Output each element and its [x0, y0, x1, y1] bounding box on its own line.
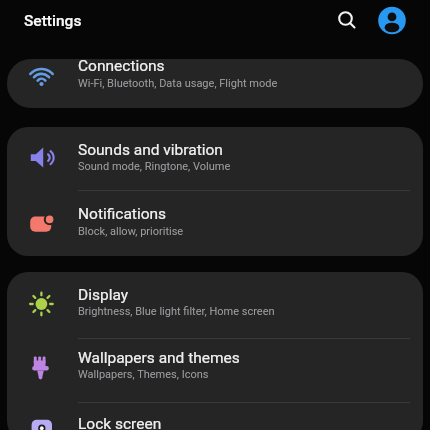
button[interactable] [7, 338, 423, 402]
staticText: Block, allow, prioritise [78, 225, 184, 238]
button[interactable] [7, 127, 423, 190]
button[interactable] [7, 402, 423, 430]
button[interactable] [7, 190, 423, 256]
staticText: Connections [78, 57, 165, 75]
staticText: Wallpapers, Themes, Icons [78, 368, 209, 381]
staticText: Wi-Fi, Bluetooth, Data usage, Flight mod… [78, 77, 278, 90]
staticText: Lock screen [78, 415, 162, 430]
staticText: Brightness, Blue light filter, Home scre… [78, 305, 275, 318]
staticText: Sound mode, Ringtone, Volume [78, 160, 231, 173]
button[interactable] [7, 59, 423, 108]
staticText: Notifications [78, 205, 167, 223]
staticText: Wallpapers and themes [78, 349, 240, 367]
button[interactable] [333, 6, 359, 32]
staticText: Sounds and vibration [78, 141, 223, 159]
staticText: Settings [24, 12, 82, 30]
button[interactable] [7, 272, 423, 338]
staticText: Display [78, 286, 129, 304]
button[interactable] [378, 7, 406, 35]
